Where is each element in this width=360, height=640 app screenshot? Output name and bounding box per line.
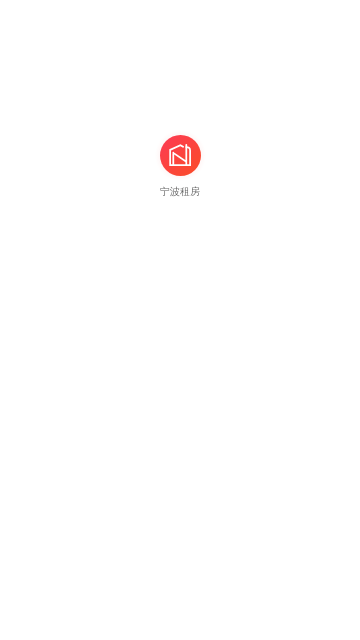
button[interactable]: 宁波租房 [155, 130, 206, 181]
staticText: 宁波租房 [160, 185, 200, 198]
